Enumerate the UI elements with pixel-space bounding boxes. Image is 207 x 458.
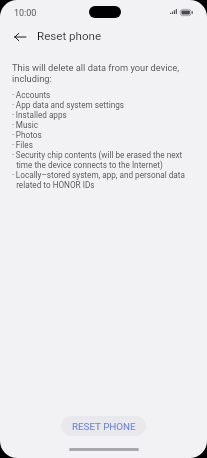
staticText: 10:00 <box>14 8 37 19</box>
staticText: This will delete all data from your devi… <box>12 62 180 84</box>
staticText: · Security chip contents (will be erased… <box>12 150 183 170</box>
staticText: RESET PHONE <box>72 421 136 432</box>
staticText: · Files <box>12 140 33 150</box>
button[interactable]: RESET PHONE <box>61 416 146 436</box>
staticText: · Photos <box>12 130 42 140</box>
staticText: · Locally–stored system, app, and person… <box>12 170 185 190</box>
staticText: · Installed apps <box>12 110 67 120</box>
staticText: · App data and system settings <box>12 100 125 110</box>
staticText: · Accounts <box>12 90 51 100</box>
staticText: · Music <box>12 120 38 130</box>
staticText: Reset phone <box>37 29 102 43</box>
button[interactable]: Back <box>8 25 32 49</box>
